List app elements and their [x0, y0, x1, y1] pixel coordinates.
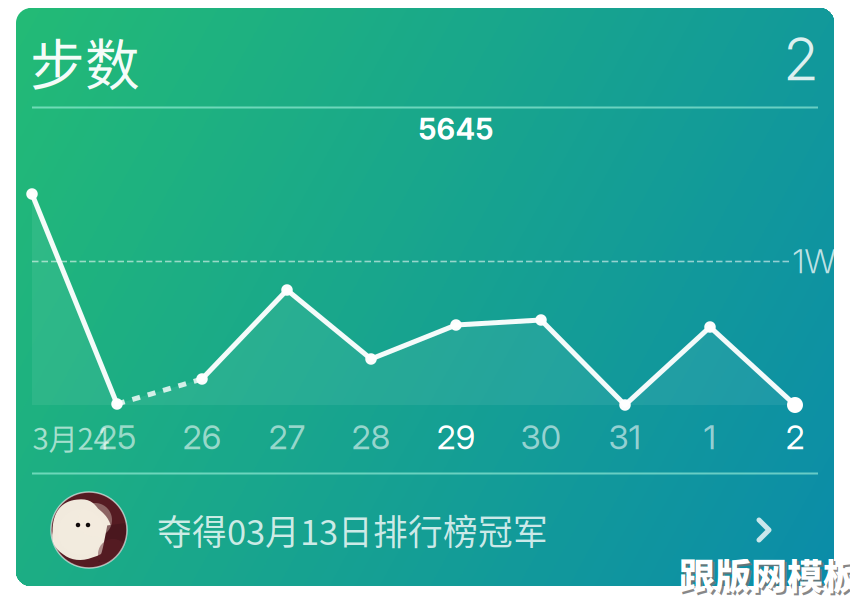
- staticText: 跟版网模板: [681, 550, 850, 598]
- staticText: 25: [98, 417, 136, 457]
- staticText: 2: [783, 23, 819, 94]
- staticText: 31: [608, 417, 641, 457]
- staticText: 5645: [418, 111, 493, 147]
- staticText: 26: [182, 417, 221, 457]
- staticText: 28: [351, 417, 390, 457]
- staticText: 2: [785, 417, 804, 457]
- staticText: 30: [520, 417, 561, 457]
- staticText: 27: [268, 417, 305, 457]
- staticText: 3月24: [32, 416, 109, 458]
- staticText: 夺得03月13日排行榜冠军: [157, 505, 548, 555]
- staticText: 跟版网模板: [679, 548, 850, 598]
- button[interactable]: 夺得03月13日排行榜冠军: [16, 482, 818, 578]
- staticText: 29: [436, 417, 475, 457]
- staticText: 步数: [30, 21, 140, 101]
- staticText: 1: [703, 417, 716, 457]
- staticText: 1W: [792, 241, 835, 281]
